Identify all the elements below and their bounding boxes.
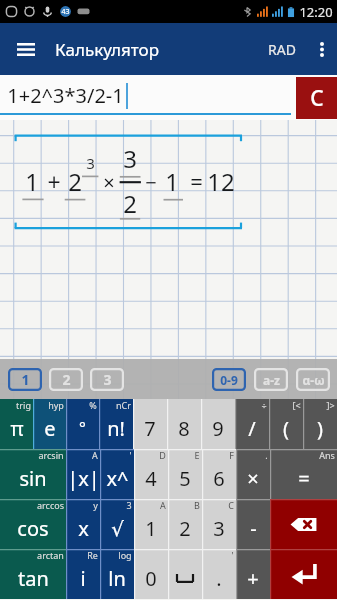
button[interactable]: 1 (8, 368, 42, 391)
staticText: x^ (106, 465, 129, 492)
button[interactable]: Menu (0, 23, 52, 75)
staticText: sin (19, 465, 47, 492)
staticText: A (160, 499, 166, 511)
staticText: ° (79, 417, 86, 439)
staticText: √ (111, 517, 124, 540)
staticText: + (247, 565, 259, 592)
staticText: × (247, 465, 259, 492)
staticText: π (10, 415, 24, 442)
button[interactable]: C (202, 499, 236, 549)
button[interactable]: α-ω (296, 368, 330, 391)
staticText: y (93, 499, 98, 511)
staticText: e (44, 415, 56, 442)
staticText: hyp (48, 399, 64, 411)
staticText: 1 (145, 515, 157, 542)
other: Space (177, 574, 193, 583)
staticText: ' (231, 549, 234, 561)
staticText: tan (18, 565, 49, 592)
button[interactable]: 9 (201, 399, 235, 449)
staticText: 3 (86, 153, 95, 173)
staticText: log (118, 549, 132, 561)
staticText: 6 (213, 465, 225, 492)
button[interactable]: A (66, 449, 100, 499)
staticText: C (310, 84, 324, 113)
button[interactable]: % (66, 399, 99, 449)
button[interactable]: [< (269, 399, 303, 449)
button[interactable]: Re (66, 549, 100, 599)
button[interactable]: Ans (270, 449, 337, 499)
button[interactable]: B (168, 499, 202, 549)
staticText: |x| (67, 465, 100, 492)
other: Enter (291, 561, 317, 587)
button[interactable]: . (236, 449, 270, 499)
button[interactable]: A (134, 499, 168, 549)
button[interactable]: E (168, 449, 202, 499)
staticText: ' (129, 449, 132, 461)
staticText: % (89, 399, 97, 411)
staticText: RAD (268, 40, 296, 59)
button[interactable]: 0-9 (212, 368, 246, 391)
button[interactable]: More options (307, 23, 337, 75)
button[interactable]: hyp (33, 399, 66, 449)
staticText: 43 (61, 7, 70, 17)
staticText: Калькулятор (55, 38, 159, 61)
button[interactable]: arctan (0, 549, 66, 599)
staticText: arcsin (38, 449, 64, 461)
staticText: [< (292, 399, 301, 411)
button[interactable]: + (236, 549, 270, 599)
button[interactable]: 3 (90, 368, 124, 391)
button[interactable]: nCr (99, 399, 133, 449)
button[interactable]: a-z (254, 368, 288, 391)
button[interactable]: D (134, 449, 168, 499)
staticText: 2 (179, 515, 191, 542)
button[interactable]: 8 (167, 399, 201, 449)
button[interactable]: Enter (270, 549, 337, 599)
staticText: / (248, 415, 256, 442)
staticText: i (80, 565, 86, 592)
staticText: 1 (21, 370, 30, 389)
staticText: 3 (126, 499, 132, 511)
staticText: ( (283, 415, 289, 442)
button[interactable]: ' (100, 449, 134, 499)
button[interactable]: ' (202, 549, 236, 599)
staticText: A (92, 449, 98, 461)
staticText: 8 (178, 415, 190, 442)
staticText: 3 (213, 515, 225, 542)
button[interactable]: arccos (0, 499, 66, 549)
button[interactable]: ]> (303, 399, 337, 449)
staticText: 2 (68, 165, 82, 197)
staticText: 2 (62, 370, 71, 389)
button[interactable]: - (236, 499, 270, 549)
button[interactable]: trig (0, 399, 33, 449)
staticText: 1+2^3*3/2-1 (7, 82, 124, 109)
button[interactable]: 3 (100, 499, 134, 549)
button[interactable]: 2 (49, 368, 83, 391)
button[interactable]: F (202, 449, 236, 499)
button[interactable]: y (66, 499, 100, 549)
staticText: arctan (37, 549, 64, 561)
staticText: 3 (103, 370, 112, 389)
button[interactable]: 7 (133, 399, 167, 449)
button[interactable]: ÷ (235, 399, 269, 449)
staticText: - (250, 515, 257, 542)
staticText: 2 (123, 187, 137, 219)
other: Backspace (290, 517, 317, 532)
button[interactable]: arcsin (0, 449, 66, 499)
button[interactable]: RAD (268, 23, 296, 75)
staticText: × (103, 169, 115, 196)
staticText: 0 (145, 565, 157, 592)
button[interactable]: Space (168, 549, 202, 599)
staticText: F (229, 449, 234, 461)
staticText: Ans (319, 449, 335, 461)
staticText: 0-9 (220, 372, 238, 388)
button[interactable]: 0 (134, 549, 168, 599)
button[interactable]: C (296, 77, 337, 119)
button[interactable]: log (100, 549, 134, 599)
button[interactable]: Backspace (270, 499, 337, 549)
staticText: trig (16, 399, 31, 411)
staticText: = (298, 465, 310, 492)
staticText: − (145, 169, 157, 196)
staticText: 12:20 (299, 3, 333, 21)
staticText: = (190, 166, 203, 196)
staticText: 3 (123, 142, 137, 174)
